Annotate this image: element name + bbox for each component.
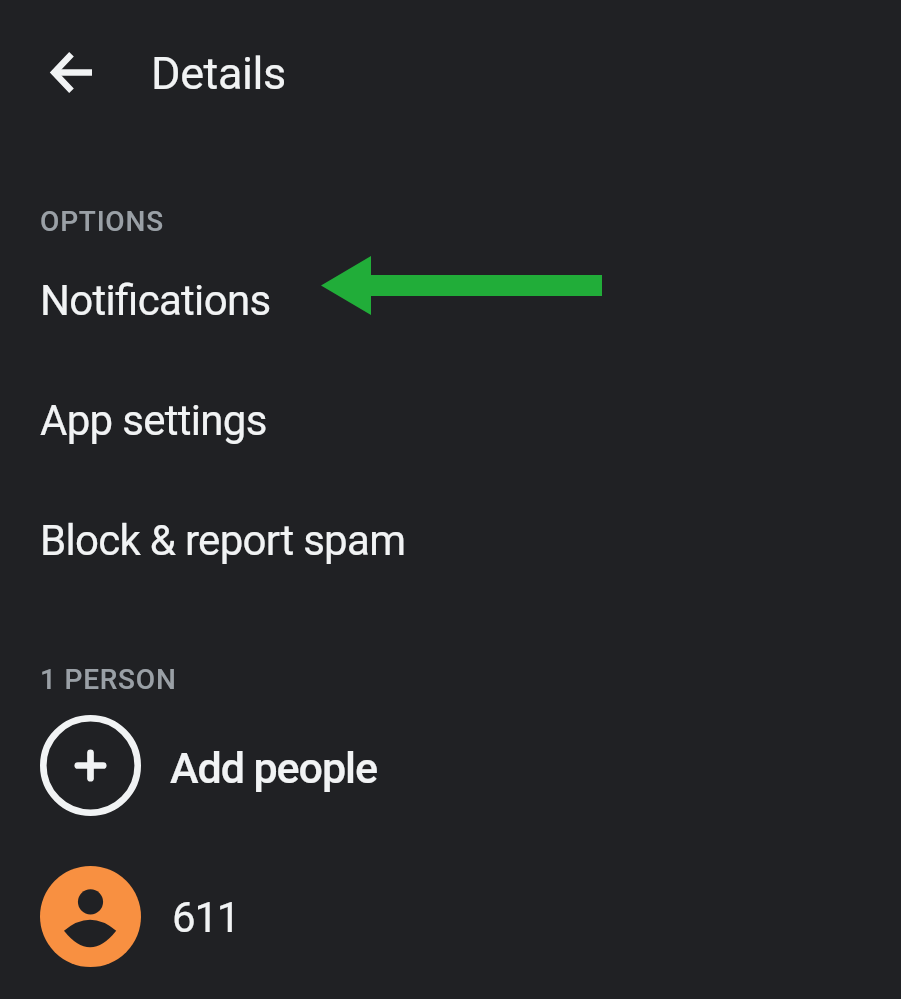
button[interactable]: Notifications xyxy=(0,259,901,341)
staticText: Details xyxy=(151,47,286,100)
staticText: 1 PERSON xyxy=(40,663,177,696)
button[interactable]: 611 xyxy=(0,865,901,967)
staticText: Add people xyxy=(170,743,377,793)
button[interactable]: App settings xyxy=(0,379,901,461)
staticText: 611 xyxy=(172,893,240,942)
staticText: App settings xyxy=(40,396,267,445)
button[interactable]: Block & report spam xyxy=(0,499,901,581)
button[interactable]: Add people xyxy=(0,714,901,816)
button[interactable]: Back xyxy=(23,24,119,120)
staticText: OPTIONS xyxy=(40,205,164,238)
staticText: Block & report spam xyxy=(40,516,406,565)
staticText: Notifications xyxy=(40,276,271,325)
